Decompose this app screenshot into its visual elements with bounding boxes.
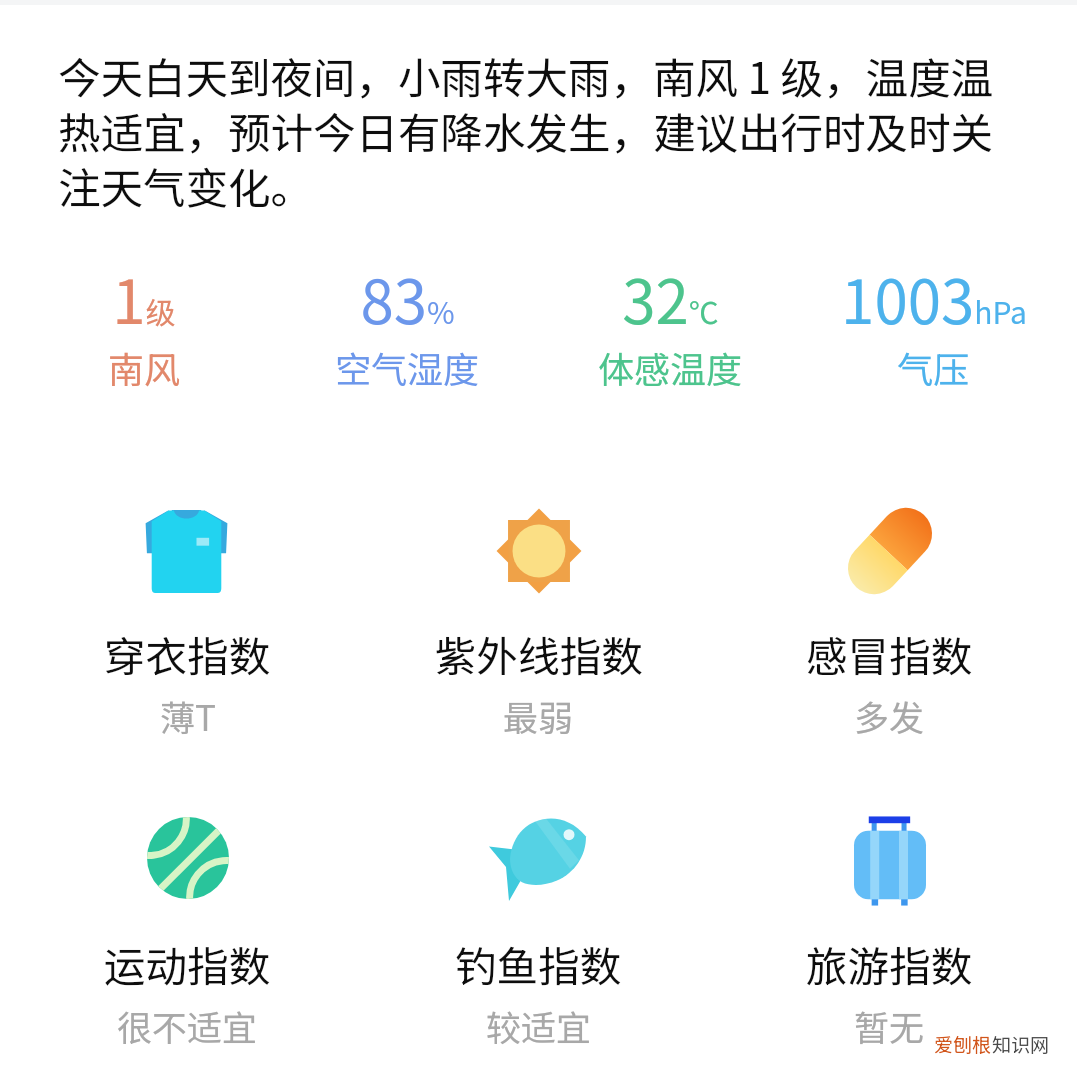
- button[interactable]: 32℃: [539, 254, 802, 393]
- staticText: 暂无: [854, 1000, 925, 1051]
- staticText: 32℃: [622, 254, 719, 341]
- staticText: 1003hPa: [841, 254, 1027, 341]
- staticText: 旅游指数: [806, 934, 973, 994]
- staticText: 爱刨根: [934, 1030, 992, 1058]
- staticText: 空气湿度: [335, 341, 480, 393]
- staticText: 钓鱼指数: [455, 934, 622, 994]
- staticText: 穿衣指数: [104, 624, 271, 684]
- staticText: 1级: [112, 254, 176, 341]
- staticText: 感冒指数: [806, 624, 973, 684]
- staticText: 多发: [854, 690, 925, 741]
- staticText: 较适宜: [486, 1000, 592, 1051]
- staticText: 薄T: [160, 690, 216, 741]
- staticText: 今天白天到夜间，小雨转大雨，南风 1 级，温度温热适宜，预计今日有降水发生，建议…: [58, 45, 1025, 217]
- staticText: 气压: [897, 341, 970, 393]
- staticText: 体感温度: [598, 341, 743, 393]
- staticText: 紫外线指数: [435, 624, 643, 684]
- staticText: 最弱: [503, 690, 574, 741]
- button[interactable]: 爱刨根: [934, 1030, 1050, 1058]
- button[interactable]: 83%: [276, 254, 539, 393]
- staticText: 南风: [108, 341, 181, 393]
- staticText: 运动指数: [104, 934, 271, 994]
- button[interactable]: 运动指数: [12, 816, 363, 1051]
- button[interactable]: 1003hPa: [802, 254, 1065, 393]
- button[interactable]: 钓鱼指数: [363, 816, 714, 1051]
- button[interactable]: 穿衣指数: [12, 506, 363, 741]
- staticText: 知识网: [992, 1030, 1050, 1058]
- button[interactable]: 旅游指数: [714, 816, 1065, 1051]
- staticText: 83%: [360, 254, 455, 341]
- staticText: 很不适宜: [117, 1000, 258, 1051]
- button[interactable]: 1级: [12, 254, 276, 393]
- button[interactable]: 感冒指数: [714, 506, 1065, 741]
- button[interactable]: 紫外线指数: [363, 506, 714, 741]
